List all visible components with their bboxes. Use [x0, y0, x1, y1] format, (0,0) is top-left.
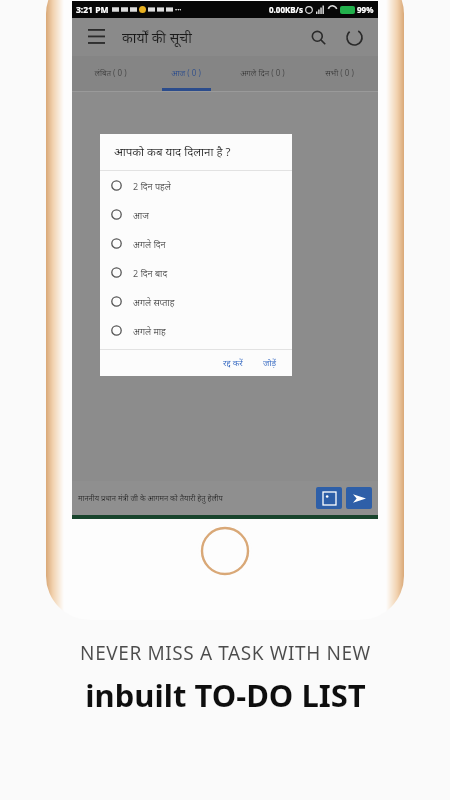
staticText: 2 दिन बाद — [133, 267, 168, 279]
button[interactable]: Menu — [82, 23, 110, 51]
staticText: 2 दिन पहले — [133, 180, 171, 192]
staticText: 99% — [357, 4, 374, 15]
button[interactable]: Attach image — [316, 487, 342, 509]
staticText: आज — [133, 209, 149, 221]
button[interactable]: Send — [346, 487, 372, 509]
button[interactable]: Search — [304, 23, 332, 51]
staticText: 0.00KB/s — [269, 4, 303, 15]
staticText: जोड़ें — [263, 357, 277, 369]
button[interactable]: लंबित ( 0 ) — [72, 56, 148, 88]
staticText: NEVER MISS A TASK WITH NEW — [80, 640, 371, 666]
staticText: लंबित ( 0 ) — [94, 67, 127, 78]
staticText: ··· — [175, 4, 182, 15]
button[interactable]: आज — [100, 200, 292, 229]
staticText: माननीय प्रधान मंत्री जी के आगमन को तैयार… — [78, 493, 312, 503]
button[interactable]: 2 दिन बाद — [100, 258, 292, 287]
staticText: अगले सप्ताह — [133, 296, 175, 308]
staticText: कार्यों की सूची — [122, 28, 192, 47]
staticText: आपको कब याद दिलाना है ? — [114, 144, 231, 160]
staticText: अगले दिन ( 0 ) — [240, 67, 285, 78]
staticText: अगले दिन — [133, 238, 166, 250]
button[interactable]: 2 दिन पहले — [100, 171, 292, 200]
button[interactable]: आज ( 0 ) — [148, 56, 224, 88]
staticText: inbuilt TO-DO LIST — [85, 674, 366, 716]
staticText: अगले माह — [133, 325, 166, 337]
staticText: सभी ( 0 ) — [325, 67, 354, 78]
button[interactable]: अगले दिन — [100, 229, 292, 258]
button[interactable]: अगले माह — [100, 316, 292, 345]
staticText: आज ( 0 ) — [171, 67, 201, 78]
button[interactable]: अगले दिन ( 0 ) — [224, 56, 301, 88]
staticText: 3:21 PM — [76, 4, 109, 16]
staticText: रद्द करें — [223, 357, 243, 369]
button[interactable]: रद्द करें — [218, 354, 248, 372]
button[interactable]: सभी ( 0 ) — [301, 56, 378, 88]
button[interactable]: जोड़ें — [258, 354, 282, 372]
button[interactable]: अगले सप्ताह — [100, 287, 292, 316]
button[interactable]: Refresh — [340, 23, 368, 51]
